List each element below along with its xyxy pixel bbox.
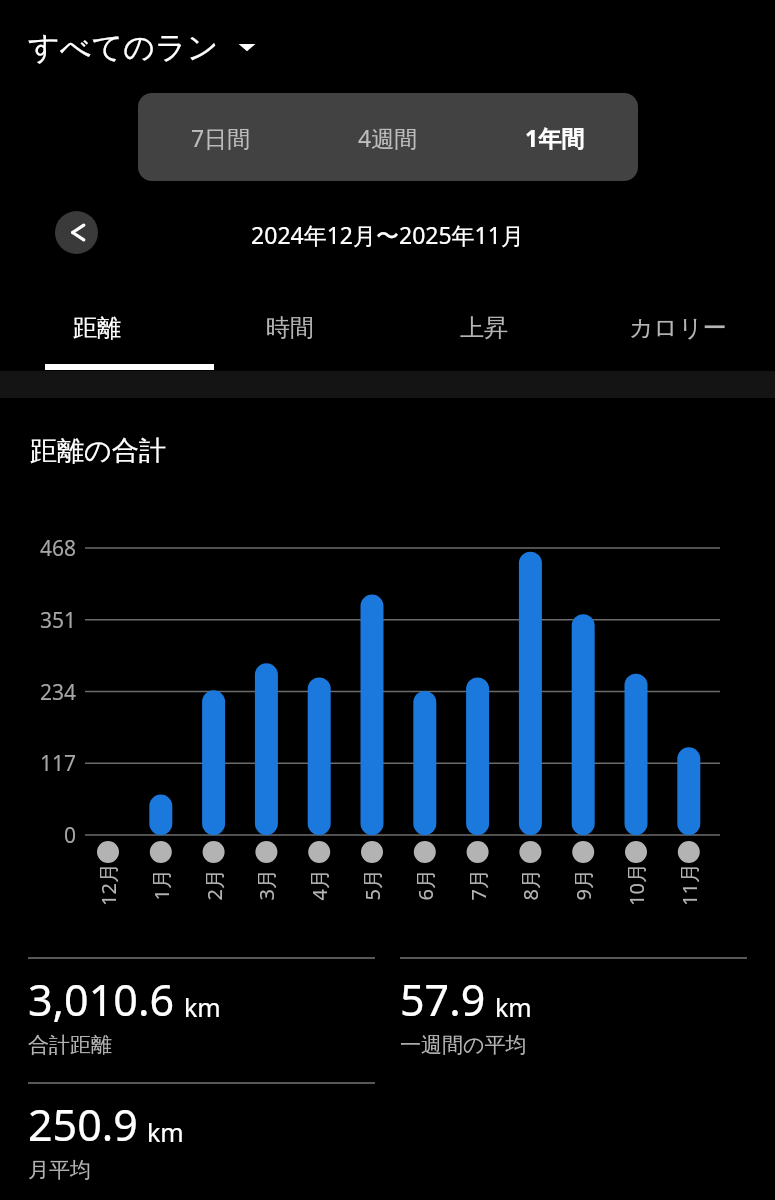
staticText: 250.9 [28,1095,138,1154]
staticText: km [147,1115,184,1149]
staticText: 57.9 [400,970,486,1029]
staticText: 7月 [464,868,491,900]
staticText: 1月 [147,868,174,900]
staticText: 0 [0,821,76,850]
staticText: 468 [0,534,76,563]
staticText: 時間 [266,313,314,343]
staticText: 234 [0,678,76,707]
button[interactable]: 時間 [193,292,387,364]
staticText: 117 [0,749,76,778]
staticText: 7日間 [191,122,251,153]
button[interactable]: すべてのラン [0,22,277,72]
staticText: 2月 [200,868,227,900]
staticText: 一週間の平均 [400,1032,527,1058]
staticText: 8月 [516,868,543,900]
staticText: 4週間 [358,122,418,153]
staticText: 351 [0,606,76,635]
staticText: 合計距離 [28,1032,112,1058]
staticText: 6月 [411,868,438,900]
button[interactable]: 4週間 [304,93,471,181]
staticText: 3,010.6 [28,970,175,1029]
staticText: すべてのラン [28,28,219,67]
button[interactable]: 上昇 [387,292,581,364]
staticText: km [495,990,532,1024]
staticText: 12月 [95,863,122,906]
staticText: 9月 [569,868,596,900]
staticText: 3月 [252,868,279,900]
staticText: 距離の合計 [30,434,166,468]
staticText: 11月 [676,863,703,906]
staticText: 2024年12月〜2025年11月 [0,219,775,250]
button[interactable]: Previous period [55,211,98,254]
staticText: 4月 [305,868,332,900]
staticText: 距離 [73,313,121,343]
staticText: 月平均 [28,1157,91,1183]
button[interactable]: 距離 [0,292,193,364]
staticText: 上昇 [460,313,508,343]
staticText: カロリー [629,313,727,343]
staticText: 5月 [358,868,385,900]
staticText: 10月 [623,863,650,906]
staticText: km [184,990,221,1024]
staticText: 1年間 [525,122,585,153]
button[interactable]: 7日間 [138,93,304,181]
button[interactable]: カロリー [581,292,775,364]
button[interactable]: 1年間 [471,93,638,181]
